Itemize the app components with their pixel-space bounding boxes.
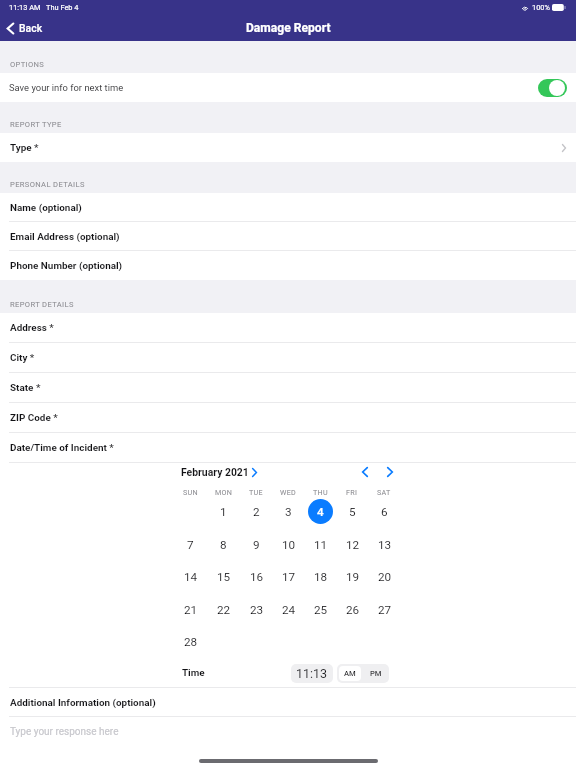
button[interactable]: Phone Number (optional) xyxy=(0,251,576,280)
button[interactable]: 20 xyxy=(372,564,397,589)
button[interactable]: AM xyxy=(339,666,361,681)
button[interactable]: 24 xyxy=(276,597,301,622)
button[interactable]: 17 xyxy=(276,564,301,589)
staticText: 11:13 AM xyxy=(9,3,41,12)
staticText: 10 xyxy=(282,538,296,552)
staticText: City * xyxy=(10,352,35,364)
button[interactable]: 9 xyxy=(244,532,269,557)
staticText: OPTIONS xyxy=(10,60,45,69)
button[interactable]: City * xyxy=(0,343,576,373)
staticText: 16 xyxy=(250,570,264,584)
staticText: Name (optional) xyxy=(10,202,82,214)
staticText: Back xyxy=(19,22,43,34)
button[interactable]: Address * xyxy=(0,313,576,343)
staticText: 3 xyxy=(285,505,292,519)
staticText: Save your info for next time xyxy=(9,82,124,93)
button[interactable]: Additional Information (optional) xyxy=(0,688,576,717)
staticText: Date/Time of Incident * xyxy=(10,442,114,454)
staticText: SUN xyxy=(183,488,198,496)
staticText: 28 xyxy=(184,635,198,649)
button[interactable]: Type your response here xyxy=(0,717,576,746)
button[interactable]: 14 xyxy=(178,564,203,589)
staticText: February 2021 xyxy=(181,466,249,478)
button[interactable]: 27 xyxy=(372,597,397,622)
staticText: 4 xyxy=(317,505,324,519)
button[interactable]: 3 xyxy=(276,499,301,524)
button[interactable]: 23 xyxy=(244,597,269,622)
staticText: TUE xyxy=(249,488,263,496)
button[interactable]: Type * xyxy=(0,133,576,162)
staticText: 25 xyxy=(314,603,328,617)
button[interactable]: 1 xyxy=(211,499,236,524)
button[interactable]: 4 xyxy=(308,499,333,524)
staticText: Type * xyxy=(10,142,39,154)
button[interactable]: 18 xyxy=(308,564,333,589)
staticText: WED xyxy=(280,488,297,496)
staticText: 22 xyxy=(217,603,231,617)
staticText: AM xyxy=(344,669,356,678)
staticText: Phone Number (optional) xyxy=(10,260,123,272)
staticText: 15 xyxy=(217,570,231,584)
staticText: Time xyxy=(182,667,205,679)
staticText: 26 xyxy=(346,603,360,617)
staticText: State * xyxy=(10,382,41,394)
button[interactable]: Date/Time of Incident * xyxy=(0,433,576,463)
button[interactable]: Back xyxy=(0,19,51,37)
staticText: 2 xyxy=(253,505,260,519)
staticText: FRI xyxy=(346,488,358,496)
staticText: 17 xyxy=(282,570,296,584)
staticText: 21 xyxy=(184,603,198,617)
button[interactable]: Name (optional) xyxy=(0,193,576,222)
staticText: Thu Feb 4 xyxy=(46,3,79,12)
staticText: MON xyxy=(215,488,233,496)
button[interactable]: PM xyxy=(363,664,389,683)
staticText: ZIP Code * xyxy=(10,412,58,424)
button[interactable]: Next month xyxy=(383,463,397,481)
button[interactable]: 12 xyxy=(340,532,365,557)
button[interactable]: 25 xyxy=(308,597,333,622)
staticText: 6 xyxy=(381,505,388,519)
button[interactable]: 7 xyxy=(178,532,203,557)
button[interactable]: 16 xyxy=(244,564,269,589)
button[interactable]: 13 xyxy=(372,532,397,557)
staticText: Email Address (optional) xyxy=(10,231,120,243)
staticText: Type your response here xyxy=(10,726,119,738)
staticText: Additional Information (optional) xyxy=(10,697,156,709)
button[interactable]: 11 xyxy=(308,532,333,557)
button[interactable]: 28 xyxy=(178,629,203,654)
button[interactable]: 22 xyxy=(211,597,236,622)
button[interactable]: 2 xyxy=(244,499,269,524)
button[interactable]: 15 xyxy=(211,564,236,589)
button[interactable]: Previous month xyxy=(358,463,372,481)
button[interactable]: 11:13 xyxy=(291,664,333,683)
staticText: 12 xyxy=(346,538,360,552)
button[interactable]: Email Address (optional) xyxy=(0,222,576,251)
staticText: 7 xyxy=(187,538,194,552)
button[interactable]: 6 xyxy=(372,499,397,524)
button[interactable]: 19 xyxy=(340,564,365,589)
staticText: SAT xyxy=(377,488,391,496)
button[interactable]: 10 xyxy=(276,532,301,557)
button[interactable]: Save your info for next time xyxy=(0,73,576,102)
button[interactable]: 5 xyxy=(340,499,365,524)
staticText: 14 xyxy=(184,570,198,584)
staticText: 23 xyxy=(250,603,264,617)
button[interactable]: 8 xyxy=(211,532,236,557)
button[interactable]: ZIP Code * xyxy=(0,403,576,433)
staticText: 100% xyxy=(532,3,550,12)
staticText: PERSONAL DETAILS xyxy=(10,180,85,189)
button[interactable]: 26 xyxy=(340,597,365,622)
staticText: 19 xyxy=(346,570,360,584)
staticText: 5 xyxy=(349,505,356,519)
button[interactable]: 21 xyxy=(178,597,203,622)
staticText: 11:13 xyxy=(296,666,328,681)
staticText: PM xyxy=(370,669,382,678)
button[interactable]: Save your info for next time toggle xyxy=(538,79,567,97)
staticText: 24 xyxy=(282,603,296,617)
staticText: 1 xyxy=(220,505,227,519)
staticText: 27 xyxy=(378,603,392,617)
staticText: 13 xyxy=(378,538,392,552)
button[interactable]: State * xyxy=(0,373,576,403)
button[interactable]: February 2021 xyxy=(178,463,260,481)
staticText: 9 xyxy=(253,538,260,552)
